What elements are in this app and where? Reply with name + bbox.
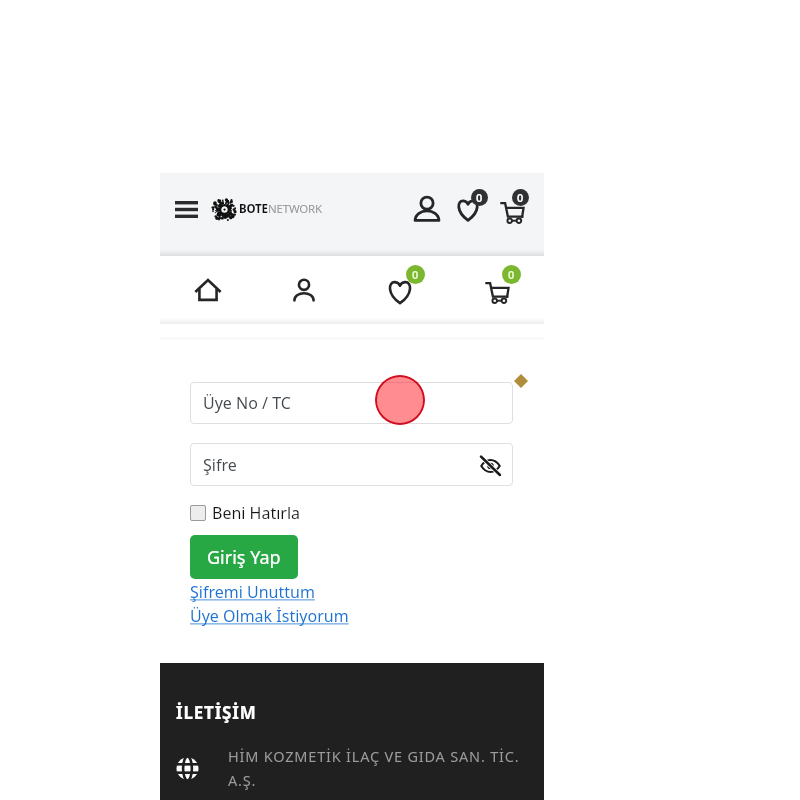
button[interactable]: Favorites <box>450 191 486 227</box>
button[interactable]: Giriş Yap <box>190 535 298 579</box>
button[interactable]: Üye No / TC <box>190 382 513 424</box>
button[interactable]: Menu <box>169 198 203 220</box>
staticText: Üye No / TC <box>203 392 291 414</box>
staticText: Beni Hatırla <box>212 502 301 524</box>
button[interactable]: Cart <box>448 256 544 324</box>
button[interactable]: Beni Hatırla <box>190 501 301 525</box>
button[interactable]: BOTE <box>212 190 322 228</box>
staticText: 0 <box>508 267 515 282</box>
staticText: BOTE <box>239 201 268 217</box>
button[interactable]: Account <box>409 191 445 227</box>
staticText: HİM KOZMETİK İLAÇ VE GIDA SAN. TİC. A.Ş. <box>228 746 528 790</box>
staticText: 0 <box>476 190 483 205</box>
staticText: NETWORK <box>268 201 322 217</box>
button[interactable]: Account <box>256 256 352 324</box>
button[interactable]: Show password <box>474 449 506 481</box>
staticText: İLETİŞİM <box>176 701 257 724</box>
button[interactable]: Home <box>160 256 256 324</box>
button[interactable]: Favorites <box>352 256 448 324</box>
button[interactable]: Cart <box>493 191 529 227</box>
button[interactable]: Üye Olmak İstiyorum <box>190 605 349 627</box>
staticText: Giriş Yap <box>207 545 281 570</box>
staticText: 0 <box>412 267 419 282</box>
button[interactable]: Şifremi Unuttum <box>190 581 315 603</box>
staticText: Şifre <box>203 454 237 476</box>
staticText: 0 <box>517 190 524 205</box>
